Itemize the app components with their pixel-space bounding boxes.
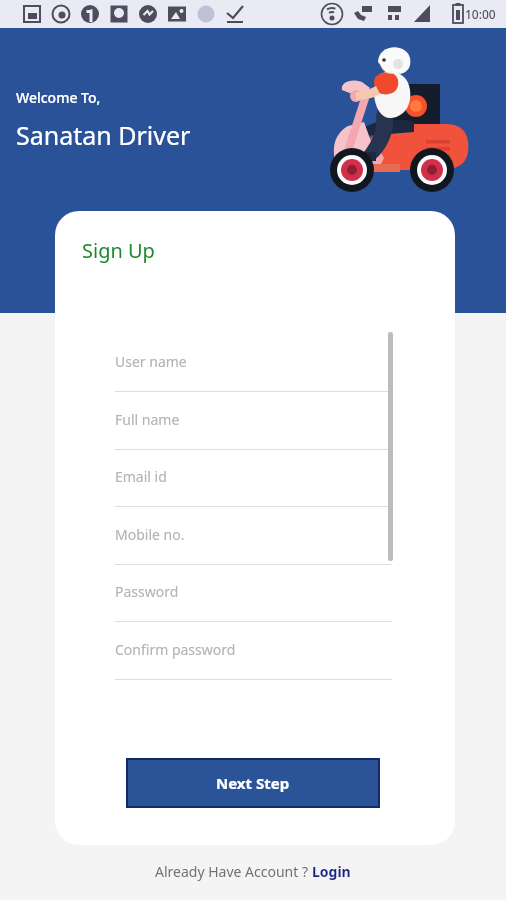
button[interactable]: Confirm password: [115, 632, 392, 680]
staticText: Next Step: [216, 773, 290, 793]
button[interactable]: Password: [115, 574, 392, 622]
staticText: Login: [312, 862, 351, 881]
staticText: Sign Up: [82, 237, 155, 264]
staticText: Already Have Account ?: [155, 862, 312, 881]
staticText: Sanatan Driver: [16, 118, 191, 152]
staticText: Confirm password: [115, 640, 236, 659]
staticText: Full name: [115, 410, 180, 429]
staticText: Email id: [115, 467, 167, 486]
staticText: Password: [115, 582, 179, 601]
other: Delivery scooter illustration: [318, 40, 498, 195]
button[interactable]: Next Step: [128, 760, 378, 806]
button[interactable]: Login: [312, 862, 351, 881]
staticText: Mobile no.: [115, 525, 185, 544]
staticText: Welcome To,: [16, 88, 101, 107]
staticText: User name: [115, 352, 187, 371]
button[interactable]: User name: [115, 344, 392, 392]
button[interactable]: Email id: [115, 459, 392, 507]
staticText: 10:00: [465, 6, 496, 22]
button[interactable]: Mobile no.: [115, 517, 392, 565]
button[interactable]: Full name: [115, 402, 392, 450]
